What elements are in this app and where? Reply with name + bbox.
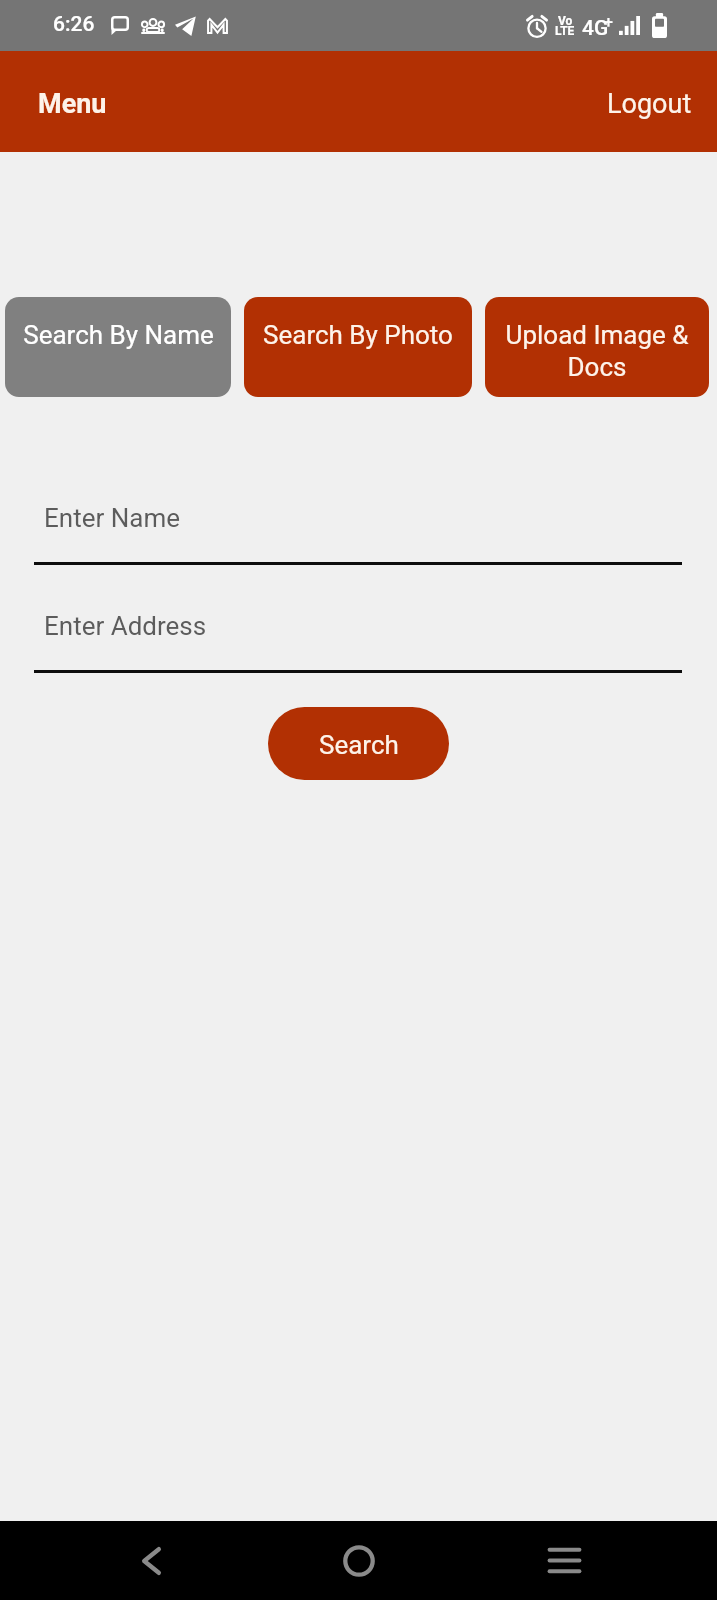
staticText: Search By Photo — [263, 320, 453, 350]
staticText: Search By Name — [23, 320, 214, 350]
button[interactable]: Home — [324, 1521, 394, 1600]
button[interactable]: Recent apps — [529, 1521, 599, 1600]
staticText: Vo — [558, 14, 573, 28]
staticText: Enter Address — [44, 611, 207, 641]
button[interactable]: Enter Name — [34, 497, 682, 565]
button[interactable]: Enter Address — [34, 605, 682, 673]
staticText: + — [604, 13, 613, 32]
staticText: LTE — [555, 24, 575, 38]
staticText: Enter Name — [44, 503, 180, 533]
button[interactable]: Back — [116, 1521, 186, 1600]
button[interactable]: Search By Name — [5, 297, 231, 397]
staticText: 4G — [582, 16, 609, 41]
staticText: Menu — [38, 88, 107, 120]
button[interactable]: Upload Image & Docs — [485, 297, 709, 397]
button[interactable]: Menu — [0, 51, 131, 152]
staticText: Upload Image & Docs — [491, 320, 703, 383]
button[interactable]: Search — [268, 707, 449, 780]
button[interactable]: Search By Photo — [244, 297, 472, 397]
staticText: Search — [319, 730, 399, 760]
button[interactable]: Logout — [583, 51, 717, 152]
staticText: Logout — [607, 88, 692, 120]
staticText: 6:26 — [53, 12, 95, 37]
